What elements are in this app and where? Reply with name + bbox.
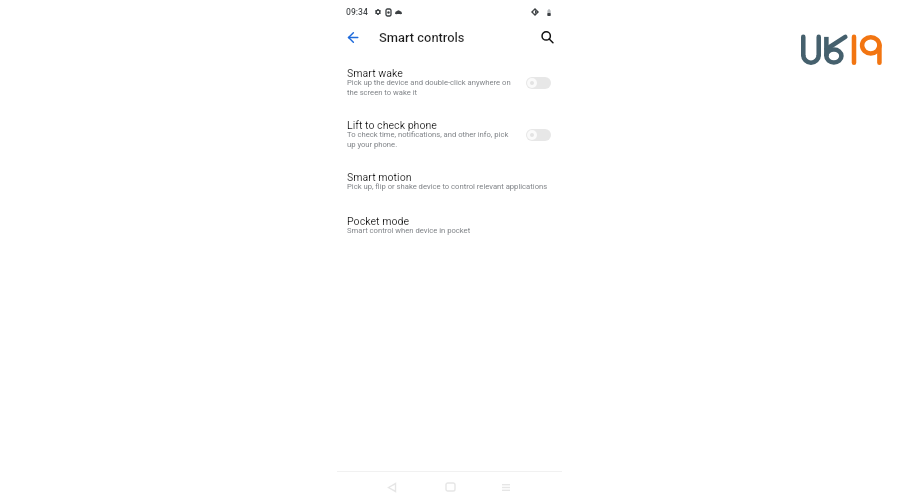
staticText: 09:34 <box>346 7 368 17</box>
staticText: Pick up, flip or shake device to control… <box>347 182 548 191</box>
staticText: up your phone. <box>347 140 398 149</box>
button[interactable]: Toggle off <box>526 129 551 141</box>
staticText: Smart control when device in pocket <box>347 226 471 235</box>
staticText: Smart controls <box>379 30 465 45</box>
staticText: Smart motion <box>347 171 412 183</box>
button[interactable]: Smart motion <box>337 171 562 193</box>
button[interactable]: Toggle off <box>526 77 551 89</box>
button[interactable]: Back <box>380 475 404 499</box>
staticText: Pick up the device and double-click anyw… <box>347 78 511 87</box>
button[interactable]: Logo <box>795 28 887 72</box>
staticText: Smart wake <box>347 67 403 79</box>
staticText: Lift to check phone <box>347 119 437 131</box>
button[interactable]: Recent apps <box>494 475 518 499</box>
button[interactable]: Smart wake <box>337 67 562 99</box>
button[interactable]: Back <box>341 25 365 49</box>
button[interactable]: Pocket mode <box>337 215 562 237</box>
button[interactable]: Home <box>438 475 462 499</box>
staticText: Pocket mode <box>347 215 410 227</box>
button[interactable]: Search <box>536 26 558 48</box>
button[interactable]: Lift to check phone <box>337 119 562 151</box>
staticText: the screen to wake it <box>347 88 418 97</box>
staticText: To check time, notifications, and other … <box>347 130 509 139</box>
